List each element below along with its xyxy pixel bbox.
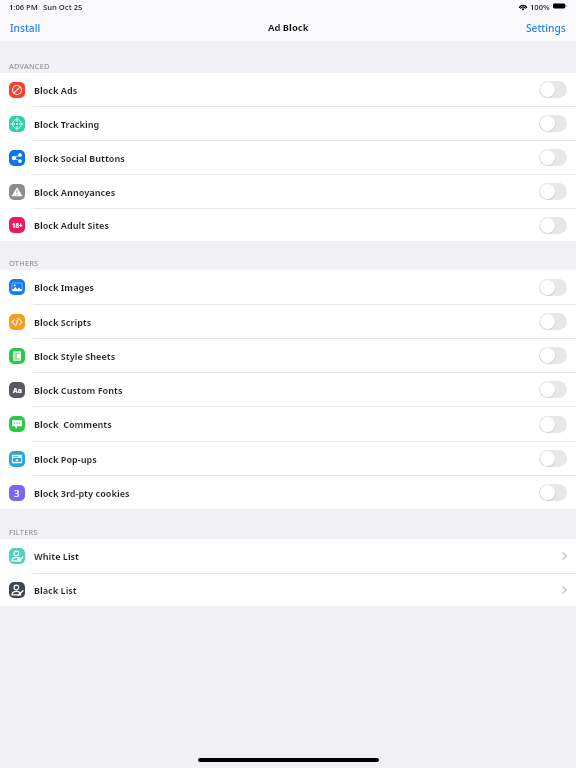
button[interactable]: Block Tracking [0, 107, 576, 140]
staticText: Aa [13, 386, 22, 395]
staticText: ADVANCED [9, 61, 50, 71]
staticText: Block Scripts [34, 316, 92, 328]
button[interactable]: Block Style Sheets [0, 339, 576, 372]
staticText: Install [10, 21, 41, 35]
button[interactable]: 18+ [0, 209, 576, 241]
staticText: 1:06 PM [9, 2, 38, 12]
staticText: Settings [526, 21, 566, 35]
button[interactable]: Settings [521, 18, 576, 38]
staticText: 3 [14, 487, 20, 500]
staticText: Block Adult Sites [34, 219, 109, 231]
staticText: Block Tracking [34, 118, 100, 130]
staticText: 18+ [12, 221, 23, 229]
button[interactable]: Block Scripts [0, 305, 576, 338]
staticText: Block Ads [34, 84, 78, 96]
button[interactable]: Block Comments [0, 407, 576, 441]
staticText: FILTERS [9, 527, 38, 537]
button[interactable]: Block 3rd-pty cookies [539, 484, 567, 501]
button[interactable]: Black List [0, 574, 576, 606]
button[interactable]: Block Images [539, 279, 567, 296]
staticText: White List [34, 550, 80, 562]
staticText: Ad Block [268, 21, 309, 34]
button[interactable]: Block Tracking [539, 115, 567, 132]
button[interactable]: 3 [0, 476, 576, 509]
button[interactable]: Block Style Sheets [539, 347, 567, 364]
staticText: Block Comments [34, 418, 112, 430]
button[interactable]: White List [0, 539, 576, 573]
button[interactable]: Block Annoyances [539, 183, 567, 200]
button[interactable]: Block Images [0, 270, 576, 304]
button[interactable]: Block Annoyances [0, 175, 576, 208]
button[interactable]: Block Pop-ups [0, 442, 576, 475]
staticText: Block Images [34, 281, 95, 293]
button[interactable]: Block Social Buttons [539, 149, 567, 166]
button[interactable]: Block Ads [539, 81, 567, 98]
button[interactable]: Aa [0, 373, 576, 406]
button[interactable]: Block Scripts [539, 313, 567, 330]
staticText: Block Style Sheets [34, 350, 116, 362]
button[interactable]: Block Ads [0, 73, 576, 106]
staticText: Block Custom Fonts [34, 384, 123, 396]
button[interactable]: Block Pop-ups [539, 450, 567, 467]
button[interactable]: Block Custom Fonts [539, 381, 567, 398]
button[interactable]: Block Social Buttons [0, 141, 576, 174]
staticText: OTHERS [9, 258, 39, 268]
staticText: Block Annoyances [34, 186, 116, 198]
staticText: Block Social Buttons [34, 152, 125, 164]
staticText: Block 3rd-pty cookies [34, 487, 130, 499]
staticText: Block Pop-ups [34, 453, 97, 465]
button[interactable]: Block Comments [539, 416, 567, 433]
staticText: Black List [34, 584, 77, 596]
button[interactable]: Block Adult Sites [539, 217, 567, 234]
staticText: 100% [530, 2, 550, 12]
button[interactable]: Install [0, 18, 46, 38]
staticText: Sun Oct 25 [43, 2, 83, 12]
